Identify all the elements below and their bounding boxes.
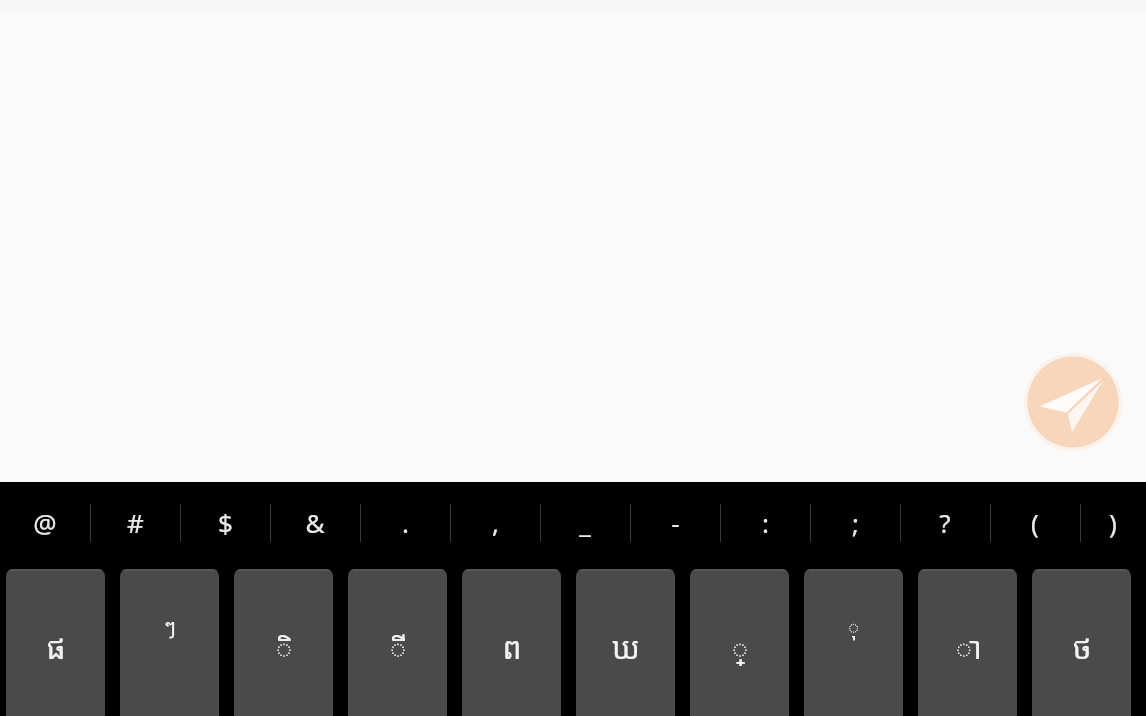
staticText: ឃ [612,627,640,668]
button[interactable]: & [270,482,360,563]
button[interactable]: - [630,482,720,563]
button[interactable]: ថ [1032,569,1131,716]
button[interactable]: ) [1080,482,1146,563]
button[interactable]: ( [990,482,1080,563]
staticText: ) [1109,505,1117,540]
staticText: ( [1031,505,1039,540]
button[interactable]: ? [900,482,990,563]
button[interactable]: ា [918,569,1017,716]
staticText: ុ [847,613,860,640]
staticText: ី [388,627,408,668]
button[interactable]: ្ [690,569,789,716]
staticText: _ [579,505,591,540]
staticText: # [127,505,144,540]
staticText: , [492,505,499,540]
staticText: $ [218,505,233,540]
staticText: ថ [1072,627,1092,668]
button[interactable]: ិ [234,569,333,716]
staticText: ៗ [164,613,176,640]
button[interactable]: @ [0,482,90,563]
button[interactable]: ី [348,569,447,716]
button[interactable]: ុ [804,569,903,716]
staticText: ា [954,627,982,668]
button[interactable]: Send [1024,353,1122,451]
staticText: . [402,505,409,540]
staticText: @ [33,505,57,540]
button[interactable]: _ [540,482,630,563]
button[interactable]: ផ [6,569,105,716]
staticText: ព [502,627,522,668]
button[interactable]: ; [810,482,900,563]
staticText: - [671,505,680,540]
staticText: : [762,505,769,540]
staticText: ; [852,505,859,540]
button[interactable]: ឃ [576,569,675,716]
staticText: ្ [730,627,750,668]
staticText: & [305,505,325,540]
button[interactable]: . [360,482,450,563]
button[interactable]: $ [180,482,270,563]
staticText: ផ [46,627,66,668]
staticText: ិ [274,627,294,668]
staticText: ? [939,505,951,540]
button[interactable]: # [90,482,180,563]
button[interactable]: ព [462,569,561,716]
button[interactable]: , [450,482,540,563]
button[interactable]: : [720,482,810,563]
button[interactable]: ៗ [120,569,219,716]
